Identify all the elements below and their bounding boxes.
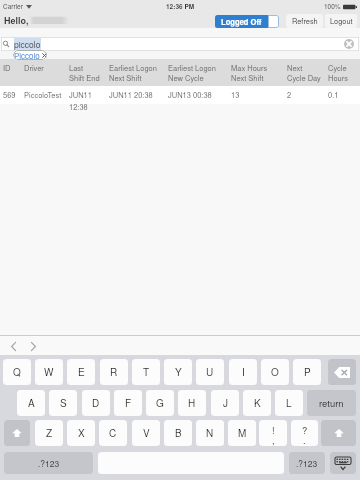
staticText: , [272, 433, 275, 446]
staticText: 100% [324, 2, 341, 11]
button[interactable] [268, 15, 279, 28]
staticText: Q [13, 365, 21, 379]
staticText: H [188, 396, 196, 410]
button[interactable]: I [229, 359, 257, 385]
button[interactable]: Backspace [328, 359, 356, 385]
button[interactable]: .?123 [4, 452, 93, 474]
staticText: G [156, 396, 164, 410]
button[interactable]: Clear search [344, 39, 354, 49]
button[interactable]: B [164, 420, 192, 446]
staticText: Next Shift [109, 72, 142, 83]
button[interactable]: E [67, 359, 95, 385]
staticText: Shift End [69, 72, 100, 83]
staticText: L [286, 396, 292, 410]
staticText: Max Hours [231, 62, 268, 73]
button[interactable]: Previous field [6, 339, 20, 353]
button[interactable]: D [82, 390, 110, 416]
button[interactable]: piccolo [1, 37, 359, 51]
staticText: M [238, 426, 247, 440]
staticText: Next [287, 62, 303, 73]
button[interactable]: N [196, 420, 224, 446]
button[interactable]: Q [3, 359, 31, 385]
button[interactable]: X [67, 420, 95, 446]
button[interactable]: Y [164, 359, 192, 385]
button[interactable]: .?123 [289, 452, 325, 474]
button[interactable]: return [307, 390, 356, 416]
staticText: S [60, 396, 67, 410]
staticText: R [110, 365, 118, 379]
staticText: 12:36 PM [166, 2, 195, 11]
staticText: New Cycle [168, 72, 204, 83]
button[interactable]: Z [35, 420, 63, 446]
staticText: N [206, 426, 214, 440]
button[interactable]: S [49, 390, 77, 416]
button[interactable]: H [178, 390, 206, 416]
button[interactable]: Shift [4, 420, 30, 446]
staticText: Hello, [4, 14, 29, 27]
button[interactable]: K [243, 390, 271, 416]
button[interactable]: M [228, 420, 256, 446]
button[interactable]: G [146, 390, 174, 416]
staticText: Hours [328, 72, 349, 83]
button[interactable]: V [132, 420, 160, 446]
staticText: .?123 [38, 457, 60, 469]
button[interactable]: J [211, 390, 239, 416]
staticText: D [92, 396, 100, 410]
staticText: Logout [330, 16, 353, 27]
button[interactable]: Hide keyboard [330, 452, 356, 474]
staticText: Piccolo [14, 50, 40, 60]
staticText: Y [175, 365, 182, 379]
staticText: ? [302, 423, 308, 437]
button[interactable]: P [293, 359, 321, 385]
button[interactable]: Shift [321, 420, 356, 446]
staticText: I [242, 365, 245, 379]
staticText: Refresh [292, 16, 318, 27]
button[interactable]: Refresh [286, 14, 323, 28]
button[interactable]: Piccolo [13, 50, 47, 60]
button[interactable]: Next field [26, 339, 40, 353]
staticText: 12:38 [69, 101, 88, 112]
button[interactable]: 569 [0, 86, 360, 114]
staticText: ID [3, 62, 11, 73]
staticText: E [78, 365, 85, 379]
staticText: Cycle Day [287, 72, 321, 83]
staticText: ! [272, 423, 275, 437]
staticText: 13 [231, 89, 240, 100]
staticText: Logged Off [221, 16, 262, 27]
button[interactable]: W [35, 359, 63, 385]
staticText: T [143, 365, 150, 379]
button[interactable]: R [100, 359, 128, 385]
button[interactable]: F [114, 390, 142, 416]
staticText: O [271, 365, 279, 379]
staticText: 2 [287, 89, 292, 100]
staticText: W [44, 365, 54, 379]
staticText: V [143, 426, 150, 440]
button[interactable]: Logged Off [215, 15, 268, 28]
button[interactable]: ? [291, 420, 318, 446]
staticText: A [28, 396, 35, 410]
button[interactable]: O [261, 359, 289, 385]
button[interactable]: L [275, 390, 303, 416]
staticText: piccolo [14, 38, 41, 50]
staticText: U [206, 365, 214, 379]
staticText: Next Shift [231, 72, 264, 83]
staticText: PiccoloTest [24, 89, 62, 100]
staticText: Last [69, 62, 84, 73]
staticText: Z [46, 426, 53, 440]
staticText: B [175, 426, 182, 440]
button[interactable]: Logout [325, 14, 357, 28]
staticText: C [109, 426, 117, 440]
button[interactable]: ! [259, 420, 287, 446]
staticText: JUN11 20:38 [109, 89, 153, 100]
button[interactable]: U [196, 359, 224, 385]
staticText: J [223, 396, 228, 410]
button[interactable]: C [99, 420, 127, 446]
staticText: Earliest Logon [168, 62, 216, 73]
button[interactable]: T [132, 359, 160, 385]
staticText: 0.1 [328, 89, 339, 100]
staticText: JUN11 [69, 89, 92, 100]
button[interactable]: A [17, 390, 45, 416]
staticText: K [254, 396, 261, 410]
staticText: return [319, 396, 344, 410]
